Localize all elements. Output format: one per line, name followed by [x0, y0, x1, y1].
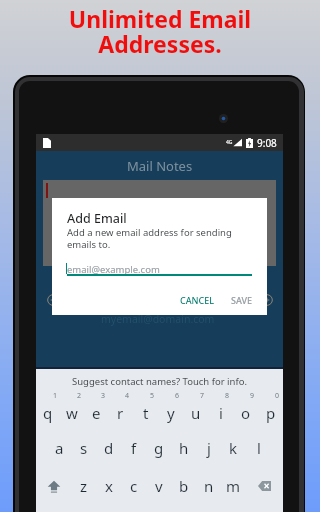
button[interactable]: 3	[84, 391, 108, 429]
staticText: Unlimited Email Addresses.	[0, 3, 320, 59]
button[interactable]: 4	[108, 391, 133, 429]
button[interactable]: 5	[133, 391, 158, 429]
button[interactable]: c	[121, 467, 146, 505]
staticText: f	[131, 438, 137, 458]
button[interactable]: j	[196, 429, 221, 467]
button[interactable]: x	[96, 467, 121, 505]
staticText: 4	[125, 391, 130, 401]
button[interactable]: Backspace	[246, 467, 283, 505]
staticText: CANCEL	[180, 294, 215, 306]
button[interactable]: d	[96, 429, 121, 467]
button[interactable]: f	[121, 429, 146, 467]
button[interactable]: Add email address	[47, 294, 59, 306]
staticText: o	[241, 403, 251, 423]
staticText: w	[66, 403, 78, 423]
button[interactable]: SAVE	[227, 290, 257, 310]
staticText: SAVE	[231, 294, 253, 306]
button[interactable]: h	[171, 429, 196, 467]
staticText: 9	[250, 391, 255, 401]
button[interactable]: v	[146, 467, 171, 505]
button[interactable]: CANCEL	[176, 290, 219, 310]
staticText: 3	[101, 391, 106, 401]
button[interactable]: 7	[183, 391, 208, 429]
button[interactable]: 1	[36, 391, 60, 429]
staticText: v	[155, 476, 163, 496]
button[interactable]: b	[171, 467, 196, 505]
staticText: a	[55, 438, 64, 458]
staticText: c	[130, 476, 138, 496]
button[interactable]: a	[47, 429, 71, 467]
button[interactable]: l	[246, 429, 271, 467]
staticText: x	[105, 476, 113, 496]
button[interactable]: Add email address	[261, 294, 273, 306]
button[interactable]: 2	[60, 391, 84, 429]
staticText: b	[179, 476, 189, 496]
staticText: email@example.com	[67, 263, 160, 276]
staticText: Mail Notes	[127, 157, 193, 175]
staticText: i	[219, 403, 223, 423]
button[interactable]: g	[146, 429, 171, 467]
staticText: l	[257, 438, 261, 458]
staticText: e	[92, 403, 101, 423]
button[interactable]: n	[196, 467, 221, 505]
staticText: 6	[175, 391, 180, 401]
staticText: 4G	[226, 139, 233, 146]
staticText: k	[229, 438, 238, 458]
staticText: 8	[225, 391, 230, 401]
staticText: Suggest contact names? Touch for info.	[72, 375, 247, 388]
button[interactable]: 6	[158, 391, 183, 429]
staticText: h	[179, 438, 189, 458]
button[interactable]: s	[71, 429, 96, 467]
staticText: Add Email	[67, 210, 127, 227]
staticText: m	[226, 476, 241, 496]
staticText: 2	[77, 391, 82, 401]
staticText: u	[191, 403, 201, 423]
staticText: myemail@domain.com	[101, 312, 215, 326]
staticText: 1	[53, 391, 58, 401]
button[interactable]: z	[72, 467, 96, 505]
staticText: 7	[200, 391, 205, 401]
staticText: p	[266, 403, 276, 423]
button[interactable]: 0	[258, 391, 283, 429]
staticText: g	[154, 438, 164, 458]
button[interactable]: Shift	[36, 467, 72, 505]
staticText: y	[167, 403, 175, 423]
staticText: 5	[150, 391, 155, 401]
staticText: d	[104, 438, 114, 458]
staticText: Add a new email address for sending emai…	[67, 226, 259, 251]
button[interactable]: 8	[208, 391, 233, 429]
button[interactable]: k	[221, 429, 246, 467]
staticText: j	[207, 438, 211, 458]
staticText: t	[143, 403, 149, 423]
staticText: z	[80, 476, 88, 496]
staticText: q	[43, 403, 53, 423]
button[interactable]: Mail Notes	[36, 151, 283, 180]
button[interactable]: m	[221, 467, 246, 505]
button[interactable]: 9	[233, 391, 258, 429]
staticText: r	[117, 403, 124, 423]
staticText: s	[80, 438, 88, 458]
staticText: n	[204, 476, 214, 496]
staticText: 9:08	[257, 136, 277, 150]
staticText: 0	[275, 391, 280, 401]
